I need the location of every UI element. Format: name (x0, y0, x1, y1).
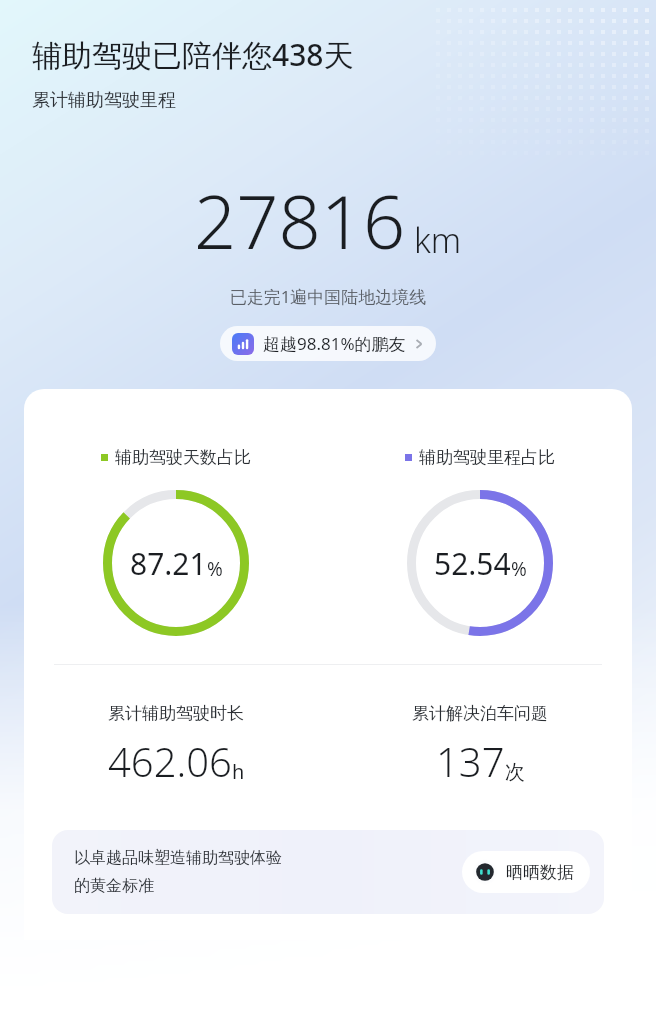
staticText: 累计辅助驾驶时长 (108, 703, 244, 724)
staticText: 次 (505, 760, 525, 785)
staticText: h (232, 758, 245, 785)
staticText: % (511, 556, 527, 582)
staticText: 52.54 (434, 543, 511, 584)
staticText: 462.06 (108, 734, 232, 788)
staticText: 辅助驾驶天数占比 (115, 447, 251, 468)
staticText: 辅助驾驶里程占比 (419, 447, 555, 468)
staticText: % (207, 556, 223, 582)
staticText: 晒晒数据 (506, 862, 574, 883)
staticText: 超越98.81%的鹏友 (263, 332, 406, 355)
staticText: 已走完1遍中国陆地边境线 (0, 285, 656, 308)
staticText: 87.21 (130, 543, 207, 584)
button[interactable]: Robot (462, 851, 590, 893)
staticText: 累计辅助驾驶里程 (32, 89, 176, 112)
staticText: 以卓越品味塑造辅助驾驶体验 (74, 848, 282, 868)
staticText: km (414, 217, 462, 263)
staticText: 的黄金标准 (74, 876, 154, 896)
staticText: 27816 (194, 170, 406, 271)
staticText: 辅助驾驶已陪伴您438天 (32, 34, 354, 75)
other: Robot (472, 859, 498, 885)
button[interactable]: 超越98.81%的鹏友 (220, 326, 436, 361)
staticText: 累计解决泊车问题 (412, 703, 548, 724)
staticText: 137 (436, 734, 505, 788)
